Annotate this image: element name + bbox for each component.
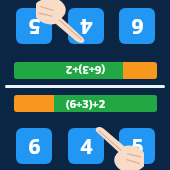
button[interactable]: 4 (68, 8, 104, 44)
staticText: 5 (28, 12, 41, 41)
button[interactable]: 6 (119, 8, 155, 44)
button[interactable]: 5 (119, 128, 155, 164)
staticText: 4 (80, 12, 93, 41)
button[interactable]: (6÷3)+2 (14, 62, 157, 79)
staticText: 4 (80, 132, 93, 161)
button[interactable]: 5 (16, 8, 52, 44)
other: Player two tap (86, 126, 144, 170)
button[interactable]: 4 (68, 128, 104, 164)
button[interactable]: 6 (16, 128, 52, 164)
other: Player one tap (36, 0, 94, 44)
staticText: 6 (131, 12, 144, 41)
staticText: (6÷3)+2 (66, 96, 105, 111)
staticText: 6 (28, 132, 41, 161)
staticText: 5 (131, 132, 144, 161)
button[interactable]: (6÷3)+2 (14, 95, 157, 112)
staticText: (6÷3)+2 (66, 63, 105, 78)
